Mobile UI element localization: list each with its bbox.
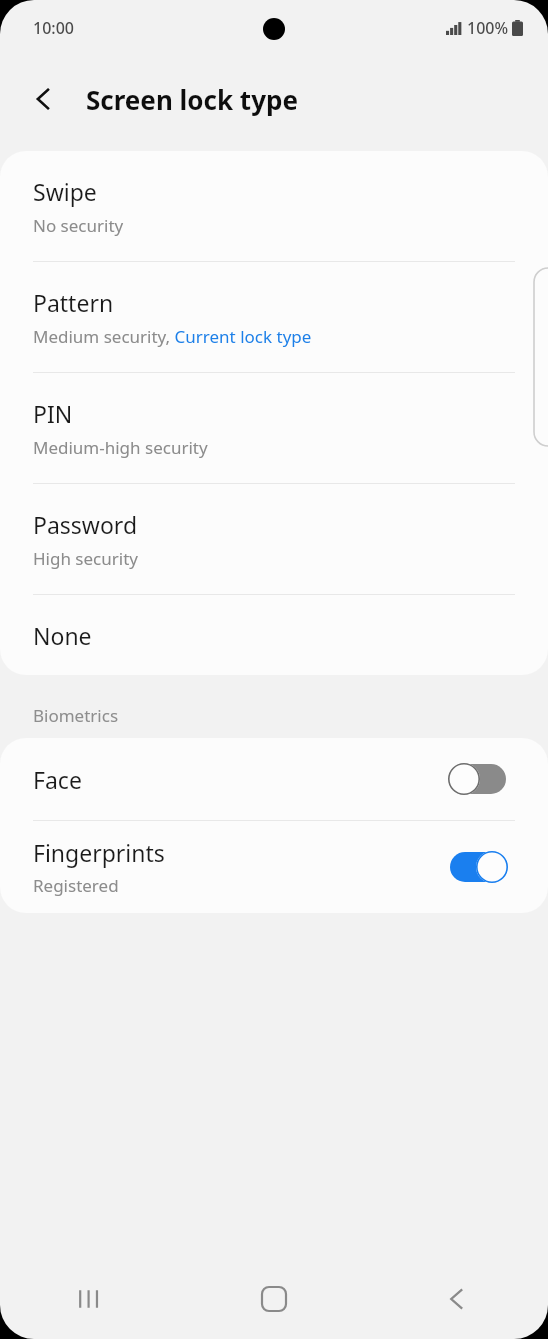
staticText: Password bbox=[33, 509, 138, 540]
staticText: Medium security, Current lock type bbox=[33, 325, 312, 348]
staticText: 10:00 bbox=[33, 17, 74, 39]
button[interactable]: PIN bbox=[0, 373, 548, 483]
staticText: No security bbox=[33, 214, 124, 237]
button[interactable]: Back bbox=[20, 75, 68, 123]
staticText: Pattern bbox=[33, 287, 114, 318]
button[interactable]: Toggle off bbox=[448, 761, 508, 797]
button[interactable]: Fingerprints bbox=[0, 821, 548, 913]
staticText: Medium-high security bbox=[33, 436, 208, 459]
staticText: PIN bbox=[33, 398, 73, 429]
staticText: 100% bbox=[467, 17, 509, 39]
staticText: Registered bbox=[33, 874, 119, 897]
button[interactable]: Back bbox=[425, 1267, 489, 1331]
staticText: Fingerprints bbox=[33, 837, 165, 868]
button[interactable]: None bbox=[0, 595, 548, 675]
button[interactable]: Swipe bbox=[0, 151, 548, 261]
button[interactable]: Recents bbox=[59, 1267, 123, 1331]
staticText: None bbox=[33, 620, 92, 651]
button[interactable]: Home bbox=[242, 1267, 306, 1331]
staticText: Face bbox=[33, 764, 82, 795]
button[interactable]: Toggle on bbox=[448, 849, 508, 885]
staticText: Screen lock type bbox=[86, 82, 298, 117]
button[interactable]: Pattern bbox=[0, 262, 548, 372]
staticText: Swipe bbox=[33, 176, 97, 207]
staticText: Biometrics bbox=[33, 704, 119, 727]
staticText: High security bbox=[33, 547, 138, 570]
button[interactable]: Password bbox=[0, 484, 548, 594]
button[interactable]: Face bbox=[0, 738, 548, 820]
